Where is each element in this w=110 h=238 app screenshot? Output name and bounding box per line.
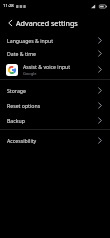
staticText: Languages & input	[7, 37, 97, 44]
staticText: Date & time	[7, 50, 97, 57]
staticText: Reset options	[7, 102, 97, 109]
staticText: Advanced settings	[16, 18, 78, 28]
staticText: Accessibility	[7, 137, 97, 144]
staticText: Google	[23, 71, 37, 76]
staticText: Assist & voice input	[23, 63, 71, 70]
button[interactable]: Languages & input	[0, 34, 110, 47]
button[interactable]: Accessibility	[0, 134, 110, 147]
button[interactable]: Reset options	[0, 99, 110, 112]
button[interactable]: Backup	[0, 114, 110, 127]
button[interactable]: Storage	[0, 84, 110, 97]
button[interactable]: Assist & voice input	[0, 60, 110, 79]
button[interactable]: Back	[4, 17, 15, 28]
staticText: Backup	[7, 117, 97, 124]
button[interactable]: Date & time	[0, 47, 110, 60]
staticText: Storage	[7, 87, 97, 94]
staticText: 11:28	[3, 3, 14, 9]
